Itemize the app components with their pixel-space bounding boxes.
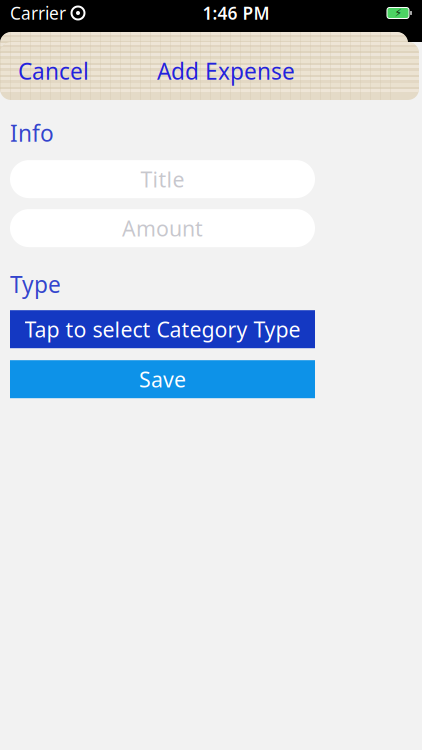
- staticText: Info: [10, 118, 54, 148]
- staticText: Title: [140, 165, 184, 193]
- staticText: Cancel: [18, 56, 89, 86]
- staticText: Amount: [122, 214, 203, 242]
- staticText: 1:46 PM: [202, 1, 269, 24]
- staticText: Save: [139, 365, 186, 393]
- staticText: Add Expense: [157, 56, 295, 86]
- button[interactable]: Tap to select Category Type: [10, 310, 315, 348]
- staticText: Tap to select Category Type: [24, 315, 300, 343]
- staticText: Carrier: [10, 1, 66, 24]
- button[interactable]: Cancel: [10, 50, 97, 92]
- button[interactable]: Title: [10, 160, 315, 198]
- staticText: Type: [10, 269, 61, 299]
- button[interactable]: Save: [10, 360, 315, 398]
- staticText: ⚡︎: [394, 7, 401, 19]
- button[interactable]: Amount: [10, 209, 315, 247]
